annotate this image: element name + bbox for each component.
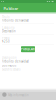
button[interactable]: PUBLICAR [21, 46, 35, 52]
staticText: Título [2, 15, 10, 19]
button[interactable]: Información [2, 92, 7, 97]
staticText: PUBLICAR [21, 47, 35, 51]
staticText: Descripción [2, 56, 17, 59]
staticText: Arbolito de navidad [2, 60, 29, 63]
staticText: Excelente estado [2, 68, 21, 71]
staticText: Más información [8, 93, 29, 97]
staticText: Arbolito de navidad [2, 19, 29, 22]
staticText: Dos metros [2, 64, 16, 67]
staticText: $250 [2, 40, 10, 43]
staticText: Precio [2, 36, 10, 40]
staticText: Publicar [3, 6, 18, 11]
staticText: Decoración [2, 29, 16, 33]
staticText: Categoría [2, 26, 14, 29]
